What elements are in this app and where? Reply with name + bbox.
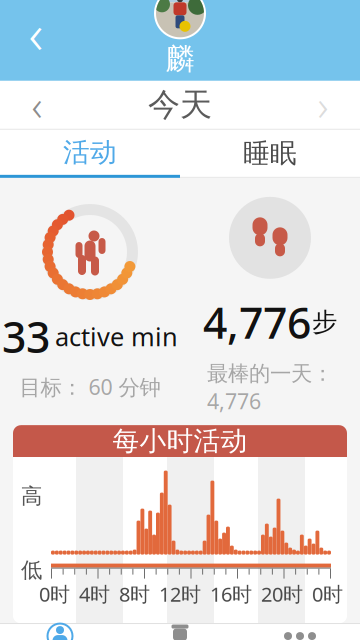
staticText: 今天 bbox=[148, 85, 212, 124]
staticText: 低 bbox=[21, 557, 42, 583]
button[interactable]: Next day bbox=[294, 81, 352, 129]
staticText: 0时 bbox=[39, 581, 70, 607]
staticText: 每小时活动 bbox=[112, 425, 247, 458]
staticText: 12时 bbox=[159, 581, 201, 607]
staticText: ‹ bbox=[31, 77, 42, 132]
staticText: 4时 bbox=[79, 581, 110, 607]
button[interactable]: Back bbox=[12, 8, 60, 56]
button[interactable]: Previous day bbox=[8, 81, 66, 129]
button[interactable]: 睡眠 bbox=[180, 130, 360, 178]
staticText: 16时 bbox=[210, 581, 252, 607]
button[interactable]: 活动 bbox=[0, 130, 180, 178]
staticText: 睡眠 bbox=[243, 137, 297, 170]
button[interactable]: 孩子 bbox=[0, 624, 120, 640]
staticText: 20时 bbox=[261, 581, 303, 607]
staticText: 33 bbox=[2, 308, 50, 365]
staticText: 目标： 60 分钟 bbox=[19, 373, 160, 401]
staticText: 最棒的一天： 4,776 bbox=[207, 358, 333, 415]
button[interactable]: 更多 bbox=[240, 624, 360, 640]
staticText: 活动 bbox=[63, 136, 117, 169]
staticText: 高 bbox=[21, 483, 42, 509]
staticText: ‹ bbox=[28, 0, 43, 70]
staticText: 麟 bbox=[165, 41, 194, 77]
staticText: 4,776 bbox=[203, 294, 311, 350]
staticText: 0时 bbox=[312, 581, 343, 607]
staticText: 步 bbox=[312, 307, 337, 338]
staticText: › bbox=[317, 77, 328, 132]
staticText: active min bbox=[55, 319, 178, 353]
button[interactable]: 排行榜 bbox=[120, 624, 240, 640]
staticText: 8时 bbox=[119, 581, 150, 607]
